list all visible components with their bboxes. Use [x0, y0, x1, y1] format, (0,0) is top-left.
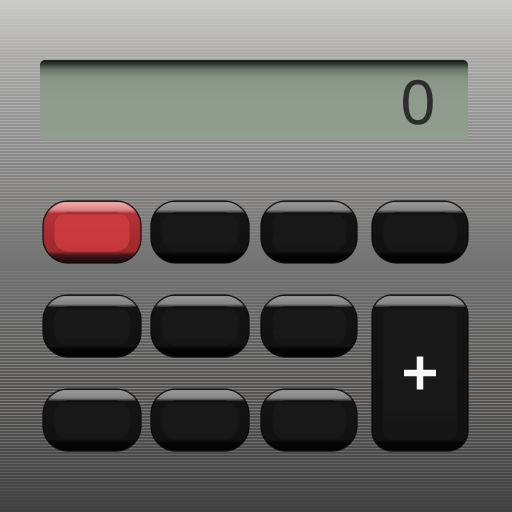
button[interactable]: Key — [261, 389, 357, 451]
button[interactable]: Add — [372, 295, 468, 451]
button[interactable]: Clear — [43, 201, 141, 263]
button[interactable]: Key — [43, 389, 141, 451]
staticText: 0 — [400, 58, 436, 142]
button[interactable]: Key — [261, 201, 357, 263]
button[interactable]: Key — [372, 201, 468, 263]
button[interactable]: Key — [151, 295, 249, 357]
button[interactable]: Key — [151, 201, 249, 263]
button[interactable]: Key — [43, 295, 141, 357]
button[interactable]: Key — [261, 295, 357, 357]
button[interactable]: Key — [151, 389, 249, 451]
